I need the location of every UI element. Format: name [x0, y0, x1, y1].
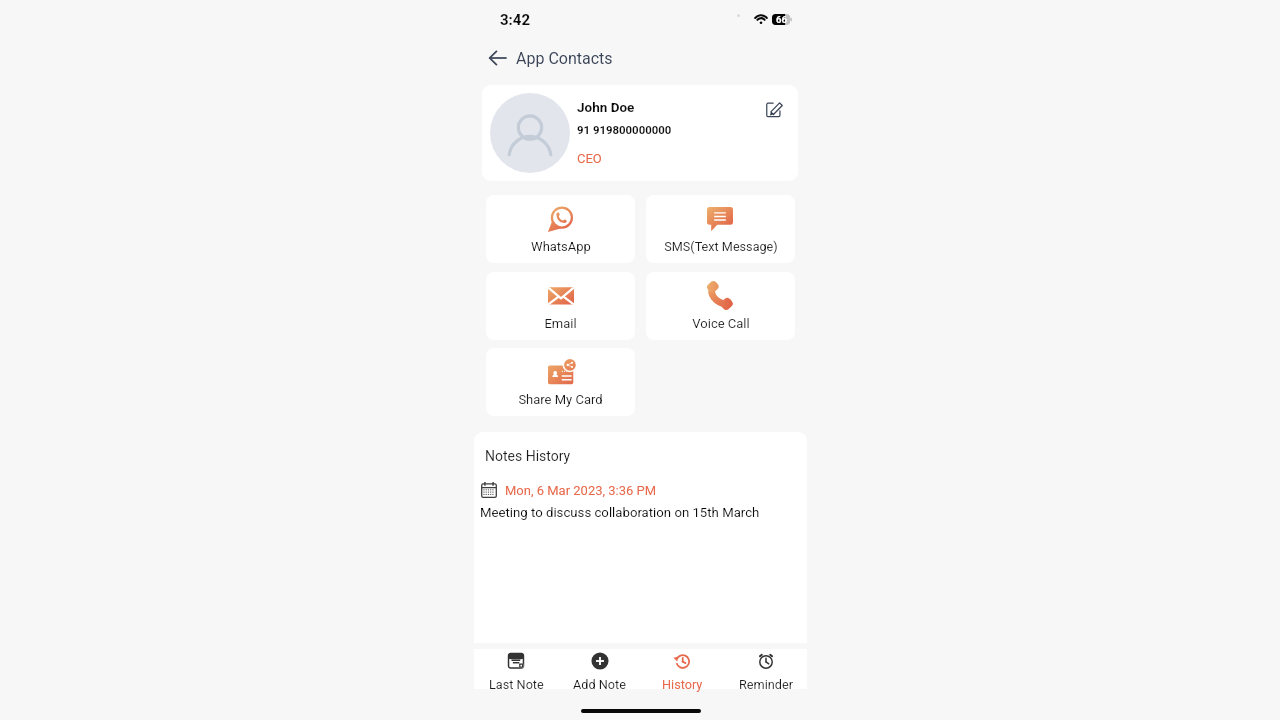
- button[interactable]: SMS(Text Message): [646, 195, 795, 263]
- staticText: Notes History: [485, 448, 571, 464]
- staticText: Reminder: [739, 677, 793, 692]
- button[interactable]: WhatsApp: [486, 195, 635, 263]
- staticText: Add Note: [573, 677, 626, 692]
- staticText: Email: [544, 316, 577, 331]
- staticText: 66: [776, 14, 787, 25]
- staticText: Last Note: [489, 677, 544, 692]
- button[interactable]: Reminder: [724, 649, 807, 689]
- staticText: App Contacts: [516, 49, 613, 68]
- button[interactable]: History: [641, 649, 724, 689]
- button[interactable]: Edit contact: [762, 96, 786, 120]
- staticText: History: [662, 677, 703, 692]
- button[interactable]: John Doe: [482, 85, 798, 181]
- button[interactable]: Back: [485, 45, 509, 69]
- staticText: WhatsApp: [531, 239, 591, 254]
- staticText: 91 919800000000: [577, 123, 672, 136]
- staticText: Mon, 6 Mar 2023, 3:36 PM: [505, 483, 657, 498]
- button[interactable]: Voice Call: [646, 272, 795, 340]
- button[interactable]: Add Note: [558, 649, 641, 689]
- staticText: Meeting to discuss collaboration on 15th…: [480, 505, 760, 520]
- staticText: CEO: [577, 151, 602, 166]
- staticText: 3:42: [500, 11, 531, 29]
- staticText: John Doe: [577, 99, 635, 115]
- button[interactable]: Share My Card: [486, 348, 635, 416]
- staticText: Share My Card: [518, 392, 603, 407]
- button[interactable]: Email: [486, 272, 635, 340]
- staticText: Voice Call: [692, 316, 750, 331]
- button[interactable]: Last Note: [474, 649, 558, 689]
- staticText: SMS(Text Message): [664, 239, 778, 254]
